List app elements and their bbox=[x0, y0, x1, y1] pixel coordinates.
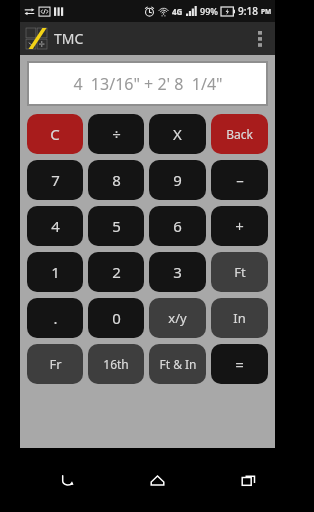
button[interactable]: More options bbox=[245, 24, 275, 54]
button[interactable]: 16th bbox=[88, 344, 144, 384]
staticText: Ft bbox=[234, 263, 246, 281]
button[interactable]: = bbox=[211, 344, 268, 384]
button[interactable]: 6 bbox=[149, 206, 206, 246]
button[interactable]: Home bbox=[133, 456, 181, 504]
staticText: Ft & In bbox=[159, 356, 197, 372]
staticText: 99% bbox=[200, 5, 218, 17]
button[interactable]: . bbox=[27, 298, 83, 338]
button[interactable]: Ft & In bbox=[149, 344, 206, 384]
staticText: C bbox=[50, 124, 60, 144]
staticText: = bbox=[235, 354, 244, 374]
staticText: 8 bbox=[112, 170, 121, 190]
button[interactable]: 5 bbox=[88, 206, 144, 246]
staticText: X bbox=[173, 124, 182, 144]
staticText: TMC bbox=[54, 29, 84, 48]
staticText: 4G bbox=[172, 6, 183, 17]
button[interactable]: 8 bbox=[88, 160, 144, 200]
staticText: + bbox=[235, 216, 244, 236]
button[interactable]: Fr bbox=[27, 344, 83, 384]
button[interactable]: 7 bbox=[27, 160, 83, 200]
button[interactable]: – bbox=[211, 160, 268, 200]
staticText: 2 bbox=[112, 262, 121, 282]
staticText: In bbox=[233, 309, 246, 327]
button[interactable]: 4 bbox=[27, 206, 83, 246]
staticText: 3 bbox=[173, 262, 182, 282]
button[interactable]: 0 bbox=[88, 298, 144, 338]
staticText: . bbox=[53, 308, 58, 328]
button[interactable]: 9 bbox=[149, 160, 206, 200]
staticText: x/y bbox=[168, 309, 187, 327]
button[interactable]: 3 bbox=[149, 252, 206, 292]
staticText: 4 bbox=[51, 216, 60, 236]
staticText: 0 bbox=[112, 308, 121, 328]
staticText: ÷ bbox=[112, 124, 121, 144]
button[interactable]: Back bbox=[43, 456, 91, 504]
button[interactable]: X bbox=[149, 114, 206, 154]
button[interactable]: x/y bbox=[149, 298, 206, 338]
button[interactable]: Ft bbox=[211, 252, 268, 292]
staticText: Fr bbox=[49, 355, 62, 373]
staticText: 7 bbox=[51, 170, 60, 190]
staticText: 5 bbox=[112, 216, 121, 236]
button[interactable]: Recent apps bbox=[224, 456, 272, 504]
button[interactable]: ÷ bbox=[88, 114, 144, 154]
staticText: PM bbox=[261, 7, 272, 16]
button[interactable]: C bbox=[27, 114, 83, 154]
staticText: 6 bbox=[173, 216, 182, 236]
staticText: 16th bbox=[103, 356, 129, 372]
button[interactable]: 1 bbox=[27, 252, 83, 292]
staticText: – bbox=[236, 170, 244, 190]
staticText: 4 13/16" + 2' 8 1/4" bbox=[73, 73, 223, 95]
button[interactable]: + bbox=[211, 206, 268, 246]
staticText: 1 bbox=[51, 262, 60, 282]
button[interactable]: In bbox=[211, 298, 268, 338]
staticText: 9:18 bbox=[238, 4, 258, 18]
button[interactable]: Back bbox=[211, 114, 268, 154]
button[interactable]: 2 bbox=[88, 252, 144, 292]
staticText: 9 bbox=[173, 170, 182, 190]
staticText: Back bbox=[226, 126, 253, 142]
